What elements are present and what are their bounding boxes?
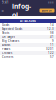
staticText: SIGN UP xyxy=(41,9,52,12)
staticText: Goals xyxy=(2,23,9,27)
staticText: 57 xyxy=(50,55,54,59)
staticText: Shots xyxy=(2,31,9,35)
staticText: 9:41 xyxy=(2,1,9,4)
staticText: ATTACKING xyxy=(20,19,36,23)
staticText: Expected Goals xyxy=(2,27,22,31)
staticText: 122 xyxy=(48,51,54,55)
staticText: 12.3 xyxy=(47,27,54,31)
staticText: infogol xyxy=(12,2,31,19)
staticText: 98 xyxy=(50,31,54,35)
staticText: 3201 xyxy=(46,47,54,51)
staticText: Assists xyxy=(2,43,10,47)
staticText: = xyxy=(1,8,3,13)
staticText: On Target xyxy=(2,35,15,39)
staticText: Crosses xyxy=(2,51,12,55)
staticText: 11 xyxy=(50,43,54,47)
staticText: Passes xyxy=(2,47,10,51)
staticText: === xyxy=(48,1,54,4)
staticText: Big Chances xyxy=(2,39,19,43)
staticText: Corners xyxy=(2,55,13,59)
staticText: 14 xyxy=(50,23,54,27)
staticText: 41 xyxy=(50,35,54,39)
staticText: 9 xyxy=(52,39,54,43)
